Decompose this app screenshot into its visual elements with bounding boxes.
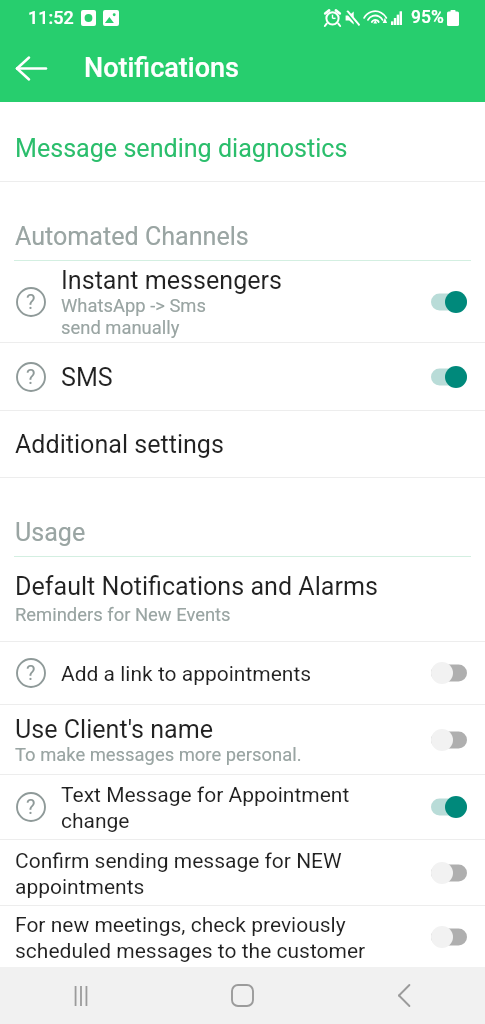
button[interactable]: Back [323, 967, 485, 1024]
button[interactable]: Recent apps [0, 967, 161, 1024]
staticText: Add a link to appointments [61, 662, 312, 687]
staticText: 95% [411, 7, 444, 28]
staticText: Use Client's name [15, 715, 214, 744]
button[interactable]: ? [0, 775, 485, 839]
button[interactable]: Message sending diagnostics [0, 102, 485, 181]
staticText: Notifications [84, 52, 239, 84]
staticText: Default Notifications and Alarms [15, 572, 378, 601]
staticText: Text Message for Appointment change [61, 783, 350, 833]
staticText: To make messages more personal. [15, 744, 302, 766]
staticText: Automated Channels [15, 222, 249, 251]
button[interactable]: Confirm sending message for NEW appointm… [0, 840, 485, 905]
button[interactable]: Default Notifications and Alarms [0, 557, 485, 641]
button[interactable]: Back [0, 34, 62, 102]
button[interactable]: Use Client's name [0, 705, 485, 774]
staticText: ? [26, 365, 36, 388]
staticText: Usage [15, 518, 86, 547]
staticText: Additional settings [15, 430, 224, 459]
staticText: Reminders for New Events [15, 604, 231, 626]
button[interactable]: Additional settings [0, 411, 485, 477]
staticText: ? [26, 661, 36, 684]
button[interactable]: For new meetings, check previously sched… [0, 906, 485, 967]
staticText: For new meetings, check previously sched… [15, 913, 366, 963]
button[interactable]: ? [0, 261, 485, 342]
staticText: ? [26, 290, 36, 313]
staticText: 11:52 [28, 7, 74, 28]
button[interactable]: Home [161, 967, 323, 1024]
staticText: Instant messengers [61, 266, 283, 295]
staticText: Message sending diagnostics [15, 134, 348, 163]
staticText: ? [26, 795, 36, 818]
button[interactable]: ? [0, 642, 485, 704]
staticText: SMS [61, 363, 113, 392]
staticText: Confirm sending message for NEW appointm… [15, 849, 342, 899]
staticText: WhatsApp -> Sms send manually [61, 295, 206, 339]
button[interactable]: ? [0, 343, 485, 410]
